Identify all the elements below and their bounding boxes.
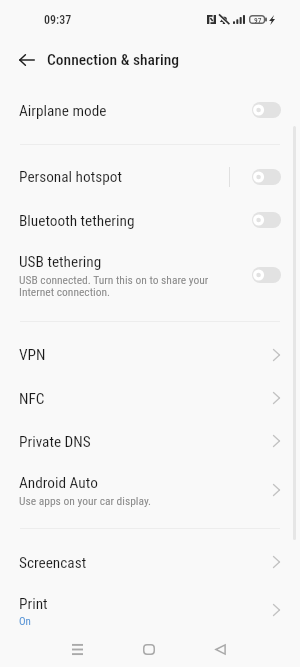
button[interactable]: Airplane mode (0, 85, 300, 143)
staticText: Use apps on your car display. (19, 494, 152, 507)
staticText: USB connected. Turn this on to share you… (19, 273, 209, 299)
staticText: Private DNS (19, 433, 91, 451)
staticText: Airplane mode (19, 102, 107, 120)
staticText: Screencast (19, 554, 87, 572)
button[interactable]: USB tethering (0, 241, 300, 320)
button[interactable]: Toggle (252, 212, 281, 228)
button[interactable]: Toggle (252, 169, 281, 185)
button[interactable]: Personal hotspot (0, 154, 300, 199)
button[interactable]: Private DNS (0, 419, 300, 462)
staticText: NFC (19, 390, 45, 408)
button[interactable]: Back (10, 43, 44, 77)
staticText: VPN (19, 346, 46, 364)
staticText: On (19, 615, 31, 628)
button[interactable]: Print (0, 583, 300, 634)
button[interactable]: Screencast (0, 541, 300, 583)
button[interactable]: Recent apps (62, 634, 92, 664)
staticText: 09:37 (44, 13, 72, 27)
staticText: Connection & sharing (47, 51, 179, 69)
button[interactable]: Back (205, 634, 235, 664)
button[interactable]: Android Auto (0, 462, 300, 528)
staticText: Android Auto (19, 474, 98, 492)
button[interactable]: Bluetooth tethering (0, 199, 300, 241)
button[interactable]: NFC (0, 376, 300, 419)
staticText: Bluetooth tethering (19, 212, 135, 230)
staticText: Personal hotspot (19, 168, 122, 186)
staticText: Print (19, 595, 48, 613)
button[interactable]: VPN (0, 333, 300, 376)
button[interactable]: Toggle (252, 267, 281, 283)
button[interactable]: Toggle (252, 102, 281, 118)
button[interactable]: Home (134, 634, 164, 664)
staticText: 97 (254, 16, 262, 25)
staticText: USB tethering (19, 253, 102, 271)
